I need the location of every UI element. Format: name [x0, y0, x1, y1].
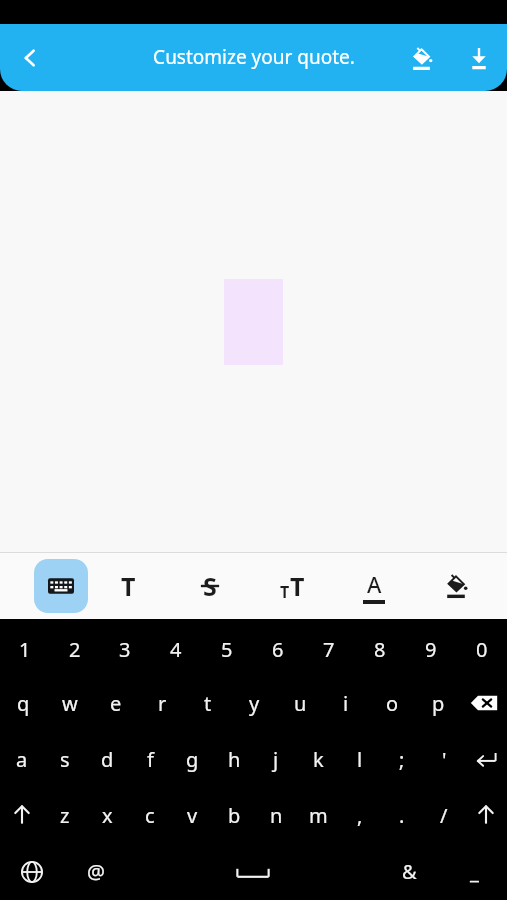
staticText: y — [249, 690, 260, 717]
button[interactable]: k — [297, 731, 339, 787]
staticText: u — [294, 690, 307, 717]
button[interactable]: Download — [457, 36, 501, 80]
button[interactable]: Bold — [88, 553, 169, 619]
staticText: e — [110, 690, 122, 717]
button[interactable]: @ — [64, 843, 128, 900]
staticText: o — [386, 690, 399, 717]
button[interactable]: Space — [128, 843, 377, 900]
staticText: 9 — [425, 636, 437, 663]
button[interactable]: w — [47, 675, 93, 731]
staticText: 2 — [69, 636, 81, 663]
button[interactable]: Back — [6, 34, 54, 82]
staticText: i — [343, 690, 349, 717]
button[interactable]: m — [297, 787, 339, 843]
button[interactable]: d — [86, 731, 129, 787]
staticText: l — [357, 746, 363, 773]
button[interactable]: n — [255, 787, 297, 843]
button[interactable]: s — [43, 731, 86, 787]
button[interactable]: t — [185, 675, 231, 731]
staticText: / — [440, 802, 448, 829]
staticText: ' — [442, 746, 447, 773]
staticText: g — [186, 746, 199, 773]
button[interactable]: / — [423, 787, 465, 843]
button[interactable]: ; — [381, 731, 423, 787]
button[interactable]: Shift — [465, 787, 507, 843]
button[interactable]: Strikethrough — [169, 553, 251, 619]
button[interactable]: 7 — [303, 623, 354, 675]
button[interactable]: 5 — [201, 623, 252, 675]
button[interactable]: Text size — [251, 553, 333, 619]
staticText: v — [187, 802, 198, 829]
button[interactable]: u — [277, 675, 323, 731]
staticText: c — [145, 802, 155, 829]
staticText: . — [399, 802, 405, 829]
button[interactable]: 0 — [456, 623, 507, 675]
staticText: T — [280, 581, 290, 603]
button[interactable]: Backspace — [461, 675, 507, 731]
staticText: Customize your quote. — [153, 44, 355, 70]
button[interactable]: Shift — [0, 787, 43, 843]
button[interactable]: 9 — [405, 623, 456, 675]
staticText: S — [203, 569, 217, 603]
button[interactable]: p — [415, 675, 461, 731]
button[interactable]: o — [369, 675, 415, 731]
staticText: d — [101, 746, 114, 773]
staticText: h — [228, 746, 241, 773]
button[interactable]: . — [381, 787, 423, 843]
button[interactable]: c — [129, 787, 171, 843]
staticText: 0 — [476, 636, 488, 663]
button[interactable]: 2 — [50, 623, 100, 675]
staticText: 4 — [170, 636, 182, 663]
staticText: r — [158, 690, 167, 717]
button[interactable]: & — [377, 843, 442, 900]
button[interactable]: a — [0, 731, 43, 787]
staticText: z — [60, 802, 70, 829]
staticText: s — [60, 746, 70, 773]
button[interactable]: f — [129, 731, 171, 787]
button[interactable]: Fill color — [415, 553, 497, 619]
button[interactable]: j — [255, 731, 297, 787]
button[interactable]: h — [213, 731, 255, 787]
button[interactable]: 8 — [354, 623, 405, 675]
staticText: 7 — [323, 636, 335, 663]
staticText: w — [62, 690, 78, 717]
button[interactable]: b — [213, 787, 255, 843]
staticText: ; — [399, 746, 405, 773]
staticText: A — [367, 569, 382, 599]
staticText: 1 — [19, 636, 31, 663]
button[interactable]: l — [339, 731, 381, 787]
button[interactable]: r — [139, 675, 185, 731]
button[interactable]: Text color — [333, 553, 415, 619]
button[interactable]: z — [43, 787, 86, 843]
button[interactable]: 1 — [0, 623, 50, 675]
button[interactable]: Keyboard — [34, 559, 88, 613]
staticText: t — [204, 690, 212, 717]
staticText: & — [402, 858, 417, 885]
staticText: @ — [87, 858, 105, 885]
staticText: 8 — [374, 636, 386, 663]
staticText: f — [147, 746, 154, 773]
staticText: 6 — [272, 636, 284, 663]
button[interactable]: Background color — [399, 36, 443, 80]
button[interactable]: _ — [442, 843, 507, 900]
button[interactable]: v — [171, 787, 213, 843]
staticText: j — [273, 746, 279, 773]
button[interactable]: x — [86, 787, 129, 843]
button[interactable]: q — [0, 675, 47, 731]
button[interactable]: Language — [0, 843, 64, 900]
button[interactable]: 4 — [150, 623, 201, 675]
button[interactable]: Enter — [465, 731, 507, 787]
button[interactable]: ' — [423, 731, 465, 787]
staticText: m — [309, 802, 328, 829]
button[interactable]: 3 — [100, 623, 150, 675]
button[interactable]: y — [231, 675, 277, 731]
staticText: k — [313, 746, 324, 773]
button[interactable]: 6 — [252, 623, 303, 675]
button[interactable]: , — [339, 787, 381, 843]
button[interactable]: i — [323, 675, 369, 731]
staticText: 3 — [119, 636, 131, 663]
button[interactable]: e — [93, 675, 139, 731]
staticText: _ — [470, 858, 479, 885]
staticText: n — [270, 802, 283, 829]
button[interactable]: g — [171, 731, 213, 787]
